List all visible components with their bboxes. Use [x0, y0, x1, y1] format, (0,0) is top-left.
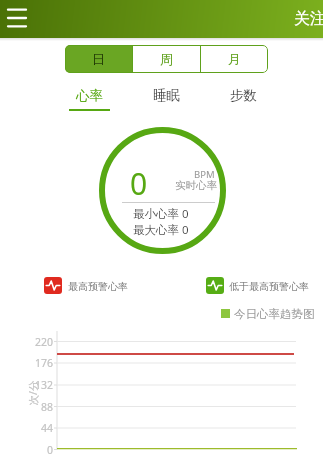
staticText: 88 — [41, 400, 54, 414]
staticText: 关注 — [294, 9, 323, 29]
staticText: 0 — [130, 163, 148, 204]
staticText: 44 — [41, 421, 54, 435]
button[interactable]: 日 — [65, 45, 132, 73]
staticText: 日 — [92, 51, 105, 67]
staticText: 最小心率 0 — [133, 206, 189, 222]
button[interactable] — [40, 274, 155, 298]
staticText: 今日心率趋势图 — [234, 307, 315, 321]
button[interactable]: 步数 — [205, 84, 282, 107]
button[interactable]: 关注 — [288, 0, 323, 38]
staticText: 220 — [35, 335, 54, 349]
staticText: 睡眠 — [153, 87, 180, 104]
staticText: BPM — [194, 168, 215, 181]
staticText: 176 — [35, 356, 54, 370]
staticText: 低于最高预警心率 — [229, 280, 309, 293]
staticText: 0 — [47, 443, 54, 455]
button[interactable]: 心率 — [51, 84, 128, 107]
staticText: 步数 — [230, 87, 257, 104]
button[interactable]: 月 — [201, 45, 268, 73]
staticText: 最高预警心率 — [68, 280, 128, 293]
button[interactable] — [0, 0, 42, 38]
staticText: 周 — [160, 51, 173, 67]
staticText: 实时心率 — [175, 179, 217, 192]
staticText: 月 — [228, 51, 241, 67]
staticText: 次/分 — [25, 380, 39, 405]
staticText: 最大心率 0 — [133, 222, 189, 238]
staticText: 132 — [35, 378, 54, 392]
button[interactable]: 睡眠 — [128, 84, 205, 107]
button[interactable]: 周 — [133, 45, 200, 73]
staticText: 心率 — [76, 87, 103, 104]
